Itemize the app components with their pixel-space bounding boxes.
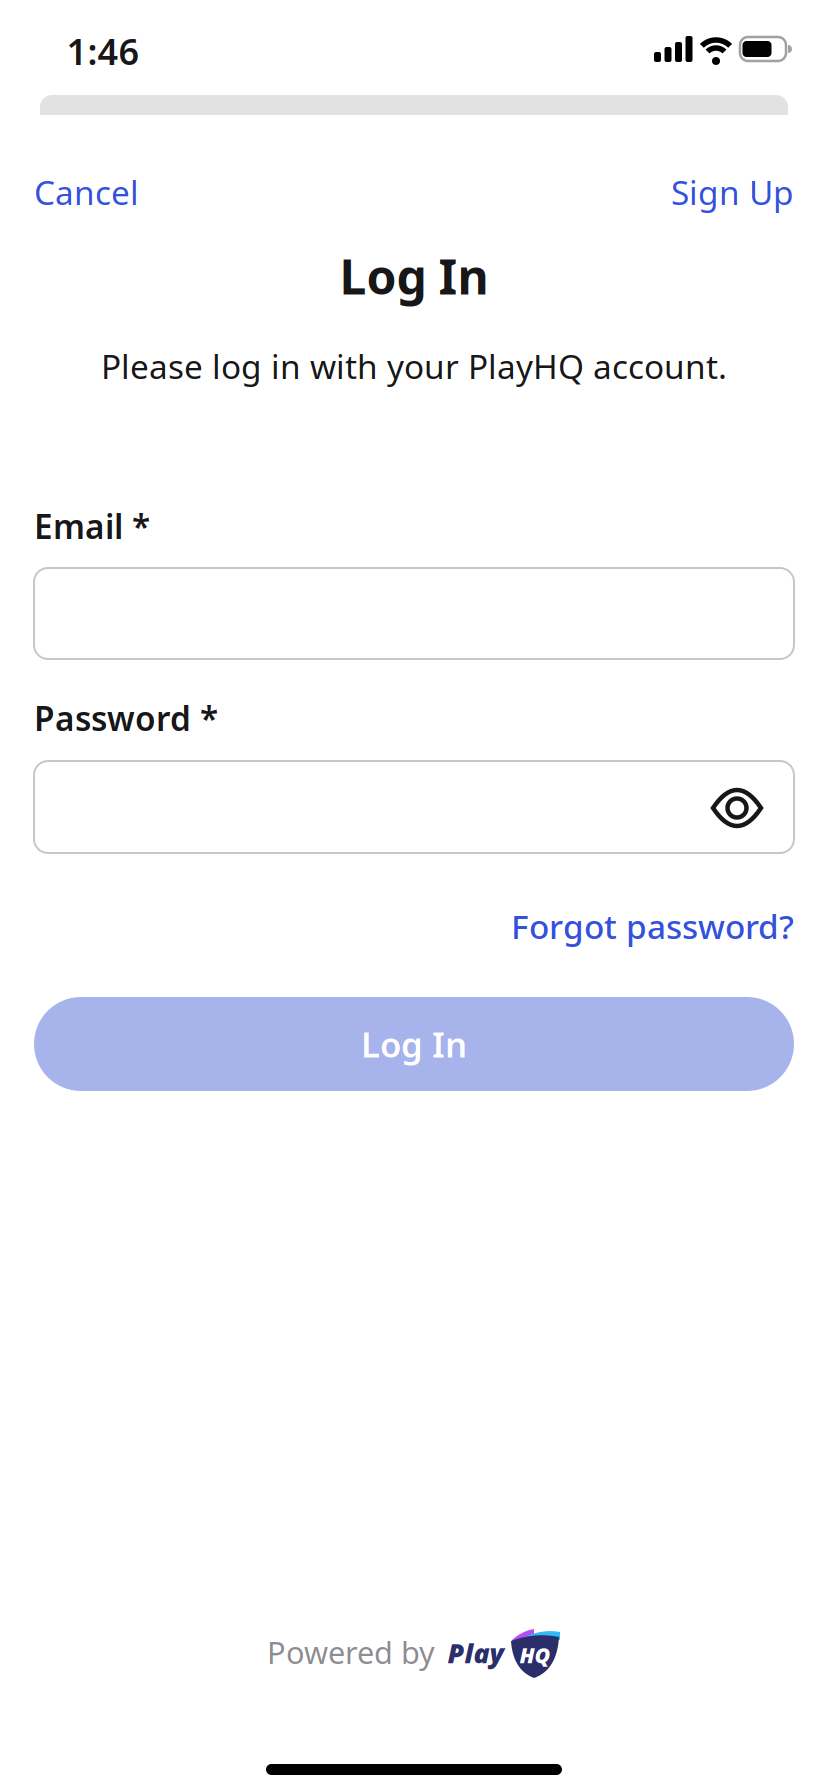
staticText: HQ xyxy=(519,1641,550,1669)
staticText: Password * xyxy=(34,696,218,740)
staticText: Forgot password? xyxy=(511,904,794,948)
staticText: Log In xyxy=(339,244,488,308)
staticText: Sign Up xyxy=(671,170,794,214)
staticText: Please log in with your PlayHQ account. xyxy=(101,344,727,388)
staticText: Cancel xyxy=(34,170,139,214)
staticText: Log In xyxy=(361,1021,467,1067)
staticText: Email * xyxy=(34,504,150,548)
staticText: Powered by xyxy=(267,1632,435,1672)
staticText: 1:46 xyxy=(66,27,139,75)
staticText: Play xyxy=(447,1635,504,1671)
